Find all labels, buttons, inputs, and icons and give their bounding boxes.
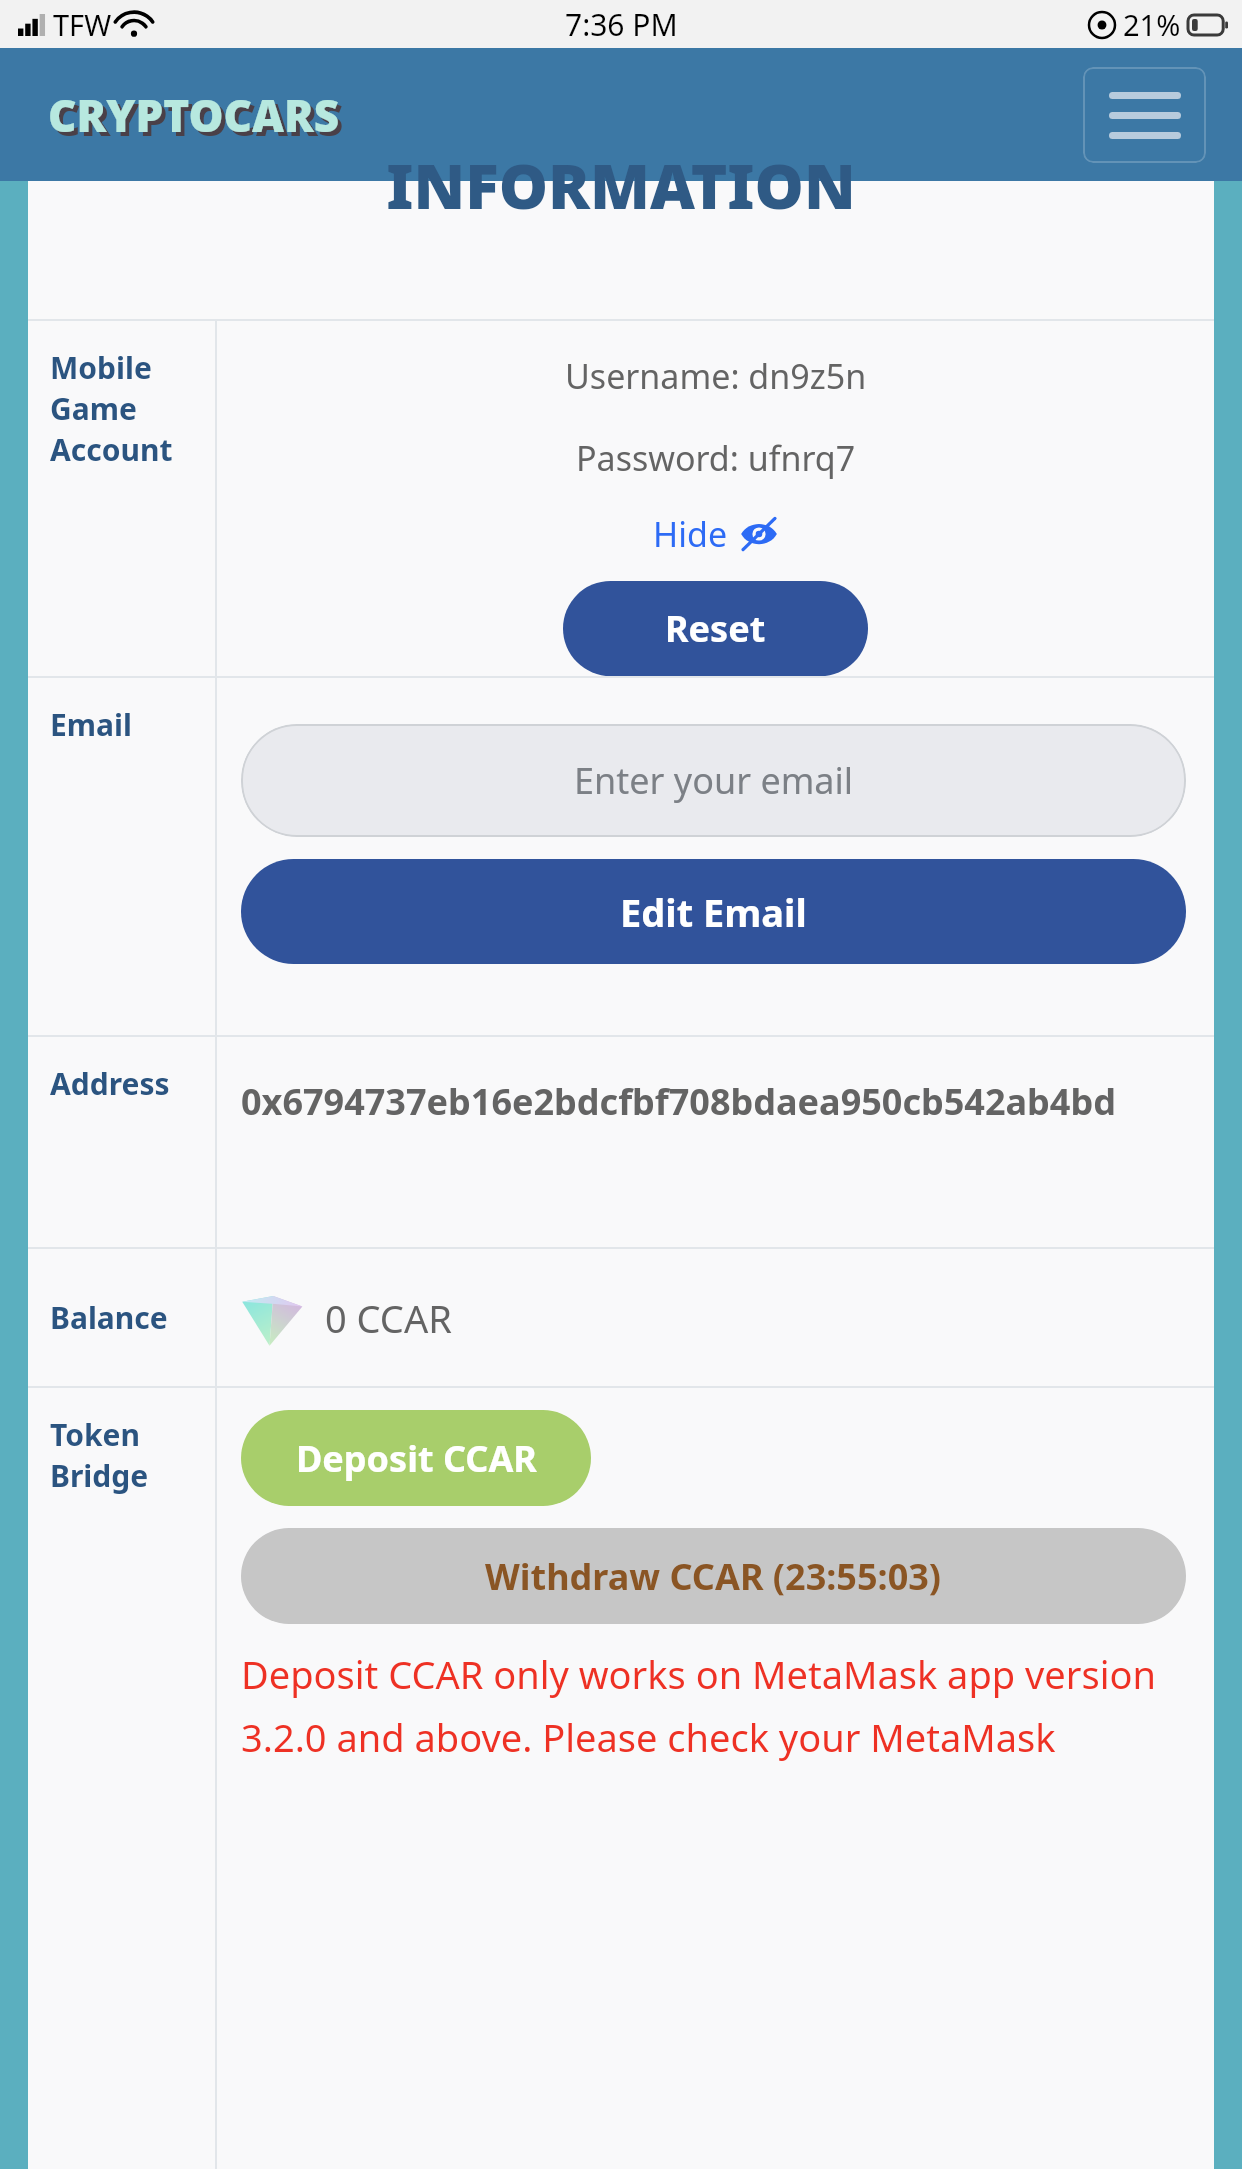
staticText: Account bbox=[50, 429, 173, 470]
button[interactable]: Reset bbox=[563, 581, 868, 676]
staticText: Edit Email bbox=[620, 886, 807, 938]
staticText: Address bbox=[50, 1063, 170, 1104]
staticText: TFW bbox=[53, 5, 112, 44]
button[interactable]: Withdraw CCAR (23:55:03) bbox=[241, 1528, 1186, 1624]
staticText: 21% bbox=[1123, 5, 1181, 44]
staticText: Username: dn9z5n bbox=[565, 353, 867, 399]
staticText: CRYPTOCARS bbox=[52, 89, 344, 149]
staticText: Password: ufnrq7 bbox=[576, 435, 856, 481]
button[interactable]: Deposit CCAR bbox=[241, 1410, 591, 1506]
staticText: 0x6794737eb16e2bdcfbf708bdaea950cb542ab4… bbox=[241, 1077, 1116, 1126]
button[interactable]: Enter your email bbox=[241, 724, 1186, 837]
staticText: Withdraw CCAR (23:55:03) bbox=[485, 1552, 942, 1601]
staticText: Reset bbox=[665, 604, 766, 653]
staticText: Token bbox=[50, 1414, 140, 1455]
staticText: Game bbox=[50, 388, 137, 429]
staticText: Bridge bbox=[50, 1455, 149, 1496]
staticText: Hide bbox=[653, 511, 728, 557]
staticText: 0 CCAR bbox=[325, 1292, 452, 1344]
staticText: Enter your email bbox=[574, 756, 854, 805]
staticText: Email bbox=[50, 704, 132, 745]
staticText: Mobile bbox=[50, 347, 152, 388]
staticText: Deposit CCAR bbox=[296, 1434, 537, 1483]
staticText: Balance bbox=[50, 1297, 168, 1338]
staticText: Deposit CCAR only works on MetaMask app … bbox=[241, 1648, 1186, 1763]
staticText: INFORMATION bbox=[28, 143, 1214, 227]
button[interactable]: Open menu bbox=[1083, 67, 1206, 163]
button[interactable]: Hide bbox=[647, 509, 784, 559]
staticText: CRYPTOCARS bbox=[48, 85, 340, 145]
staticText: 7:36 PM bbox=[565, 4, 678, 45]
button[interactable]: Edit Email bbox=[241, 859, 1186, 964]
